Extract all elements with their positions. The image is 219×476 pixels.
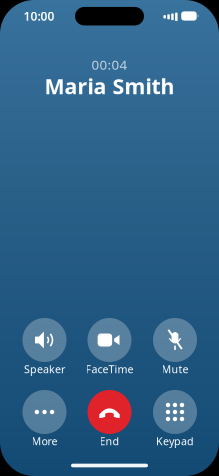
button[interactable]: Speaker [12, 318, 76, 376]
staticText: Keypad [156, 434, 194, 448]
staticText: FaceTime [85, 362, 133, 376]
button[interactable]: End [77, 390, 141, 448]
staticText: End [99, 434, 119, 448]
staticText: 00:04 [91, 56, 127, 73]
staticText: 10:00 [23, 8, 54, 24]
button[interactable]: Keypad [143, 390, 207, 448]
staticText: Speaker [24, 362, 65, 376]
button[interactable]: More [12, 390, 76, 448]
staticText: Mute [161, 362, 188, 376]
staticText: Maria Smith [44, 72, 174, 100]
button[interactable]: Mute [143, 318, 207, 376]
button[interactable]: FaceTime [77, 318, 141, 376]
staticText: More [31, 434, 57, 448]
